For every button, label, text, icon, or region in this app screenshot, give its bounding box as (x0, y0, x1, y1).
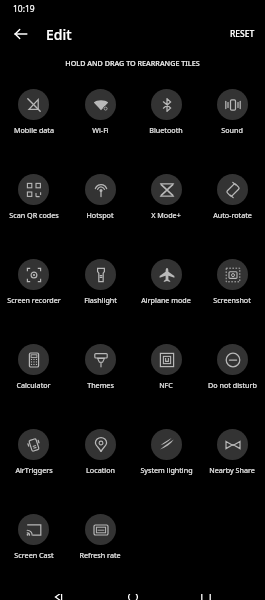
staticText: Edit (46, 25, 72, 44)
button[interactable]: Calculator (0, 339, 67, 424)
staticText: Sound (221, 125, 243, 135)
button[interactable]: Location (67, 424, 133, 509)
staticText: System lighting (140, 465, 193, 475)
staticText: Screen Cast (14, 550, 54, 560)
button[interactable]: Scan QR codes (0, 169, 67, 254)
staticText: Location (86, 465, 115, 475)
button[interactable]: Hotspot (67, 169, 133, 254)
staticText: Calculator (16, 380, 51, 390)
staticText: Auto-rotate (213, 210, 252, 220)
staticText: Hotspot (86, 210, 114, 220)
staticText: Screenshot (213, 295, 251, 305)
staticText: HOLD AND DRAG TO REARRANGE TILES (65, 58, 200, 68)
button[interactable]: Do not disturb (199, 339, 265, 424)
button[interactable]: X Mode+ (133, 169, 199, 254)
staticText: Wi-Fi (92, 125, 109, 135)
button[interactable]: Screen Cast (0, 509, 67, 594)
button[interactable]: Recents (192, 594, 220, 600)
button[interactable]: Nearby Share (199, 424, 265, 509)
button[interactable]: AirTriggers (0, 424, 67, 509)
staticText: Refresh rate (79, 550, 121, 560)
staticText: Nearby Share (209, 465, 255, 475)
staticText: X Mode+ (151, 210, 181, 220)
button[interactable]: Sound (199, 84, 265, 169)
staticText: Mobile data (14, 125, 54, 135)
button[interactable]: NFC (133, 339, 199, 424)
button[interactable]: Back (45, 594, 73, 600)
button[interactable]: Mobile data (0, 84, 67, 169)
staticText: Screen recorder (7, 295, 61, 305)
button[interactable]: System lighting (133, 424, 199, 509)
staticText: NFC (159, 380, 173, 390)
staticText: 10:19 (13, 3, 35, 15)
staticText: Bluetooth (149, 125, 183, 135)
button[interactable]: Screenshot (199, 254, 265, 339)
button[interactable]: Home (119, 594, 147, 600)
button[interactable]: Screen recorder (0, 254, 67, 339)
button[interactable]: Back (6, 19, 36, 49)
button[interactable]: Refresh rate (67, 509, 133, 594)
staticText: RESET (230, 28, 255, 40)
staticText: Do not disturb (208, 380, 257, 390)
button[interactable]: Airplane mode (133, 254, 199, 339)
button[interactable]: Flashlight (67, 254, 133, 339)
staticText: Flashlight (84, 295, 117, 305)
button[interactable]: Wi-Fi (67, 84, 133, 169)
button[interactable]: Auto-rotate (199, 169, 265, 254)
button[interactable]: Themes (67, 339, 133, 424)
staticText: Themes (87, 380, 114, 390)
staticText: Airplane mode (141, 295, 191, 305)
button[interactable]: Bluetooth (133, 84, 199, 169)
staticText: AirTriggers (15, 465, 53, 475)
button[interactable]: RESET (220, 23, 265, 45)
staticText: Scan QR codes (9, 210, 59, 220)
